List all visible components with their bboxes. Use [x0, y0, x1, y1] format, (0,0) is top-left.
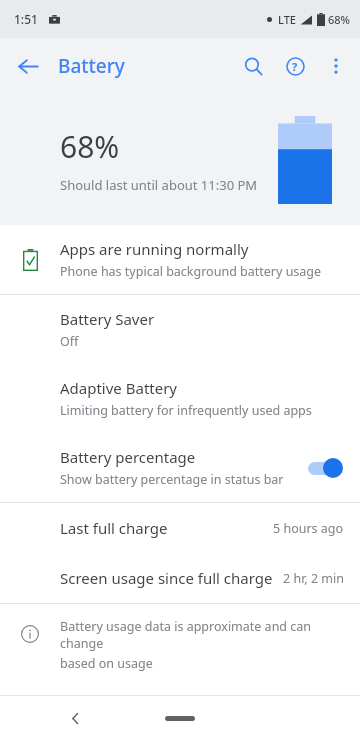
button[interactable]: Last full charge: [0, 503, 360, 553]
staticText: ?: [292, 59, 298, 74]
staticText: Battery percentage: [60, 447, 196, 467]
staticText: 68%: [328, 12, 350, 27]
button[interactable]: Help: [274, 45, 316, 87]
staticText: Adaptive Battery: [60, 378, 178, 398]
button[interactable]: Back: [8, 46, 48, 86]
staticText: Apps are running normally: [60, 239, 249, 259]
button[interactable]: More options: [316, 46, 356, 86]
button[interactable]: Battery percentage toggle: [306, 456, 344, 480]
staticText: Battery: [58, 53, 125, 79]
button[interactable]: Back: [58, 701, 92, 735]
button[interactable]: Adaptive Battery: [0, 364, 360, 433]
button[interactable]: Apps are running normally: [0, 225, 360, 294]
staticText: 5 hours ago: [273, 520, 344, 537]
staticText: Screen usage since full charge: [60, 568, 273, 588]
staticText: Last full charge: [60, 518, 168, 538]
staticText: 68%: [60, 126, 120, 167]
staticText: Show battery percentage in status bar: [60, 471, 284, 488]
button[interactable]: Battery percentage: [0, 433, 360, 502]
staticText: 2 hr, 2 min: [283, 570, 344, 587]
button[interactable]: Battery Saver: [0, 295, 360, 364]
staticText: Off: [60, 333, 79, 350]
button[interactable]: Home: [163, 708, 197, 728]
staticText: 1:51: [14, 11, 38, 27]
button[interactable]: Search: [232, 45, 274, 87]
button[interactable]: Screen usage since full charge: [0, 553, 360, 603]
staticText: Battery usage data is approximate and ca…: [60, 618, 336, 652]
staticText: based on usage: [60, 655, 153, 672]
staticText: Limiting battery for infrequently used a…: [60, 402, 312, 419]
staticText: LTE: [278, 12, 296, 27]
staticText: Battery Saver: [60, 309, 155, 329]
staticText: Phone has typical background battery usa…: [60, 263, 322, 280]
staticText: Should last until about 11:30 PM: [60, 176, 258, 194]
